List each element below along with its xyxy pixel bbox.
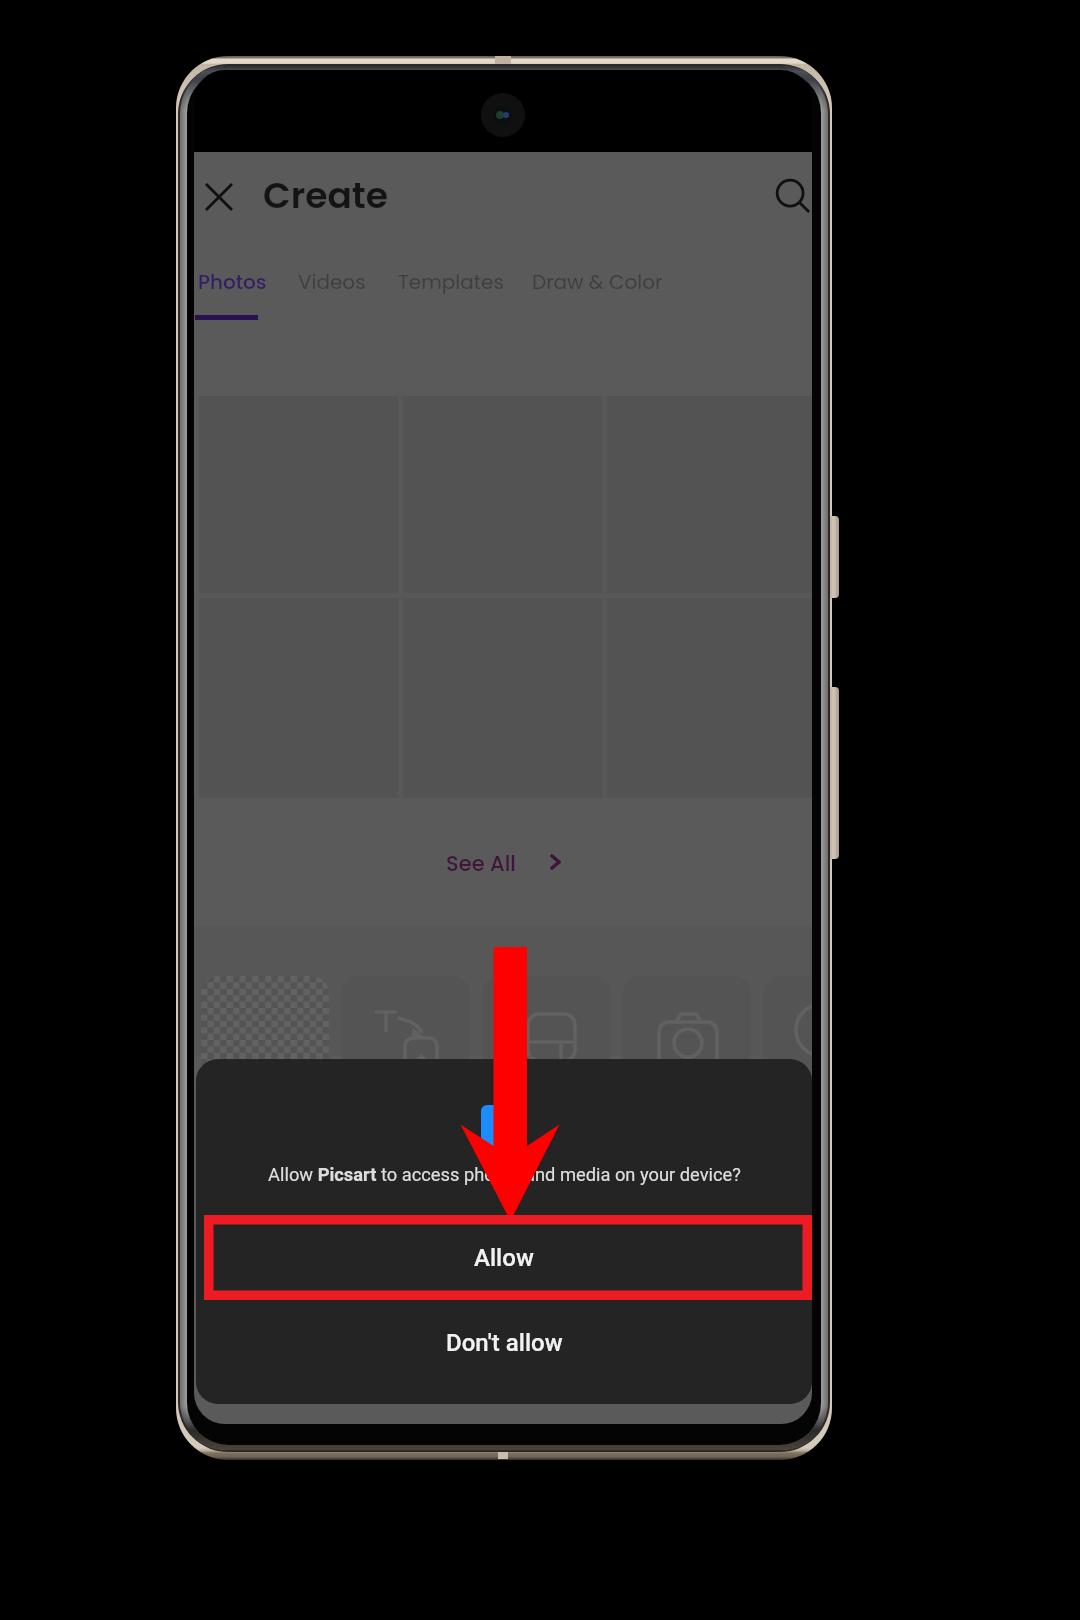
staticText: Allow Picsart to access photos and media… bbox=[268, 1164, 741, 1185]
button[interactable]: Videos bbox=[298, 268, 366, 296]
staticText: Draw & Color bbox=[532, 268, 663, 296]
button[interactable]: Templates bbox=[398, 268, 504, 296]
button[interactable] bbox=[201, 976, 329, 1128]
staticText: Don't allow bbox=[446, 1329, 563, 1357]
button[interactable]: Draw & Color bbox=[532, 268, 663, 296]
staticText: See All bbox=[446, 849, 516, 878]
button[interactable]: See All bbox=[446, 849, 516, 878]
button[interactable] bbox=[482, 976, 610, 1128]
button[interactable]: Close bbox=[199, 177, 239, 217]
button[interactable]: Don't allow bbox=[196, 1300, 812, 1385]
staticText: Photos bbox=[198, 268, 267, 296]
staticText: Videos bbox=[298, 268, 366, 296]
button[interactable] bbox=[623, 976, 751, 1128]
staticText: Templates bbox=[398, 268, 504, 296]
button[interactable] bbox=[763, 976, 812, 1128]
button[interactable]: Search bbox=[771, 174, 812, 218]
button[interactable] bbox=[342, 976, 470, 1128]
button[interactable]: Photos bbox=[198, 268, 267, 296]
staticText: Allow bbox=[474, 1244, 534, 1272]
button[interactable]: Allow bbox=[196, 1215, 812, 1300]
staticText: Create bbox=[263, 170, 388, 220]
